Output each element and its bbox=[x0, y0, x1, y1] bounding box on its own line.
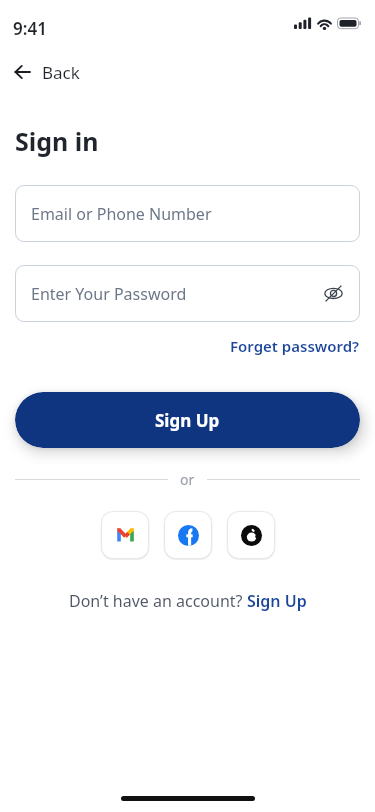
staticText: Sign in bbox=[15, 124, 99, 158]
staticText: Enter Your Password bbox=[31, 283, 187, 305]
button[interactable]: Sign Up bbox=[247, 590, 307, 612]
button[interactable]: Enter Your Password bbox=[15, 265, 360, 322]
staticText: Sign Up bbox=[155, 409, 220, 432]
button[interactable]: Back bbox=[0, 58, 80, 86]
button[interactable] bbox=[164, 511, 212, 559]
staticText: Email or Phone Number bbox=[31, 203, 212, 225]
button[interactable]: Forget password? bbox=[230, 336, 360, 356]
button[interactable]: Sign Up bbox=[15, 392, 360, 448]
staticText: Don’t have an account? bbox=[69, 590, 247, 612]
staticText: Sign Up bbox=[247, 590, 307, 612]
button[interactable]: Email or Phone Number bbox=[15, 185, 360, 242]
button[interactable] bbox=[227, 511, 275, 559]
button[interactable] bbox=[101, 511, 149, 559]
staticText: 9:41 bbox=[13, 17, 47, 40]
staticText: Forget password? bbox=[230, 336, 360, 356]
staticText: Back bbox=[42, 61, 80, 84]
staticText: or bbox=[180, 470, 195, 489]
